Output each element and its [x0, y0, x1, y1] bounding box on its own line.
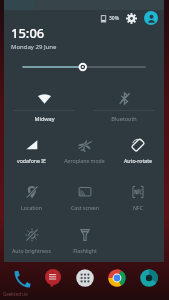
staticText: Midway [34, 115, 55, 122]
button[interactable]: Settings [125, 12, 138, 25]
staticText: Geektech.ie [3, 291, 28, 297]
button[interactable]: Phone [4, 256, 37, 300]
staticText: Auto brightness [12, 247, 51, 254]
staticText: Location [21, 204, 42, 211]
button[interactable]: Flashlight [58, 223, 111, 262]
button[interactable]: Cast screen [58, 176, 111, 223]
button[interactable]: Brightness [4, 60, 164, 74]
button[interactable]: Auto brightness [4, 223, 58, 262]
staticText: NFC [133, 204, 143, 211]
button[interactable]: User profile [144, 11, 158, 25]
button[interactable]: Midway [4, 83, 84, 129]
button[interactable]: Location [4, 176, 58, 223]
button[interactable]: Photos [133, 256, 165, 300]
button[interactable]: Aeroplane mode [58, 129, 111, 176]
staticText: Bluetooth [111, 115, 137, 122]
staticText: 30% [109, 15, 119, 22]
staticText: vodafone IE [17, 157, 46, 164]
button[interactable]: Messaging [37, 256, 69, 300]
staticText: 15:06 [11, 24, 45, 42]
staticText: Auto-rotate [124, 157, 152, 164]
staticText: Cast screen [71, 204, 99, 211]
button[interactable]: Auto-rotate [111, 129, 164, 176]
button[interactable]: vodafone IE [4, 129, 58, 176]
staticText: Aeroplane mode [64, 157, 105, 164]
button[interactable]: NFC [111, 176, 164, 223]
button[interactable]: Bluetooth [84, 83, 164, 129]
button[interactable]: Chrome [101, 256, 133, 300]
staticText: Monday 29 June [11, 43, 57, 51]
staticText: Flashlight [73, 247, 97, 254]
button[interactable]: All apps [69, 256, 101, 300]
